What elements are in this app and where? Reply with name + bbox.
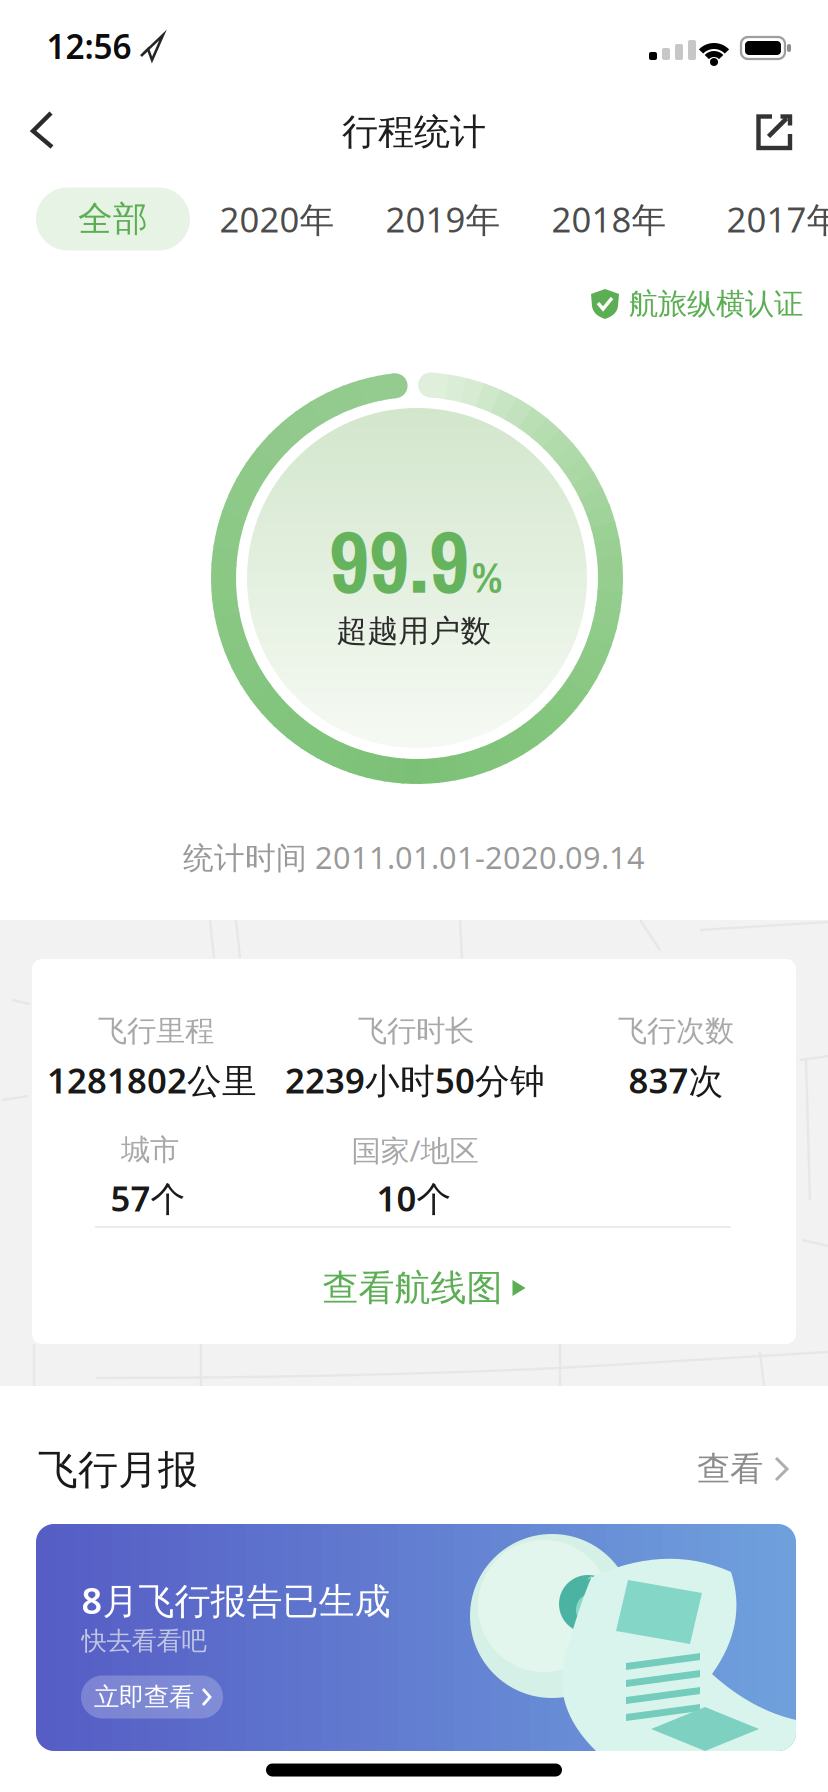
staticText: 飞行次数 bbox=[618, 1013, 734, 1049]
staticText: 立即查看 bbox=[94, 1681, 194, 1712]
button[interactable]: 2020年 bbox=[202, 187, 352, 250]
button[interactable]: Back bbox=[11, 104, 67, 158]
staticText: 全部 bbox=[78, 198, 148, 240]
staticText: 57个 bbox=[110, 1175, 185, 1221]
staticText: 2020年 bbox=[219, 196, 334, 242]
button[interactable]: 全部 bbox=[36, 187, 190, 250]
button[interactable]: Share bbox=[750, 108, 798, 156]
staticText: 8月飞行报告已生成 bbox=[81, 1576, 390, 1624]
staticText: 城市 bbox=[121, 1132, 179, 1168]
staticText: 2019年 bbox=[385, 196, 500, 242]
staticText: 99.9 bbox=[329, 502, 469, 620]
staticText: 飞行里程 bbox=[98, 1013, 214, 1049]
staticText: 飞行月报 bbox=[38, 1445, 198, 1494]
button[interactable]: 2017年 bbox=[709, 187, 828, 250]
button[interactable]: 查看 bbox=[677, 1444, 807, 1494]
staticText: % bbox=[471, 548, 502, 606]
staticText: 2017年 bbox=[726, 196, 828, 242]
staticText: 2239小时50分钟 bbox=[285, 1057, 545, 1103]
button[interactable]: 2019年 bbox=[368, 187, 518, 250]
staticText: 统计时间 2011.01.01-2020.09.14 bbox=[183, 837, 645, 877]
staticText: 1281802公里 bbox=[47, 1057, 257, 1103]
staticText: 行程统计 bbox=[342, 110, 486, 154]
staticText: 查看 bbox=[697, 1448, 763, 1489]
staticText: 快去看看吧 bbox=[81, 1625, 206, 1656]
staticText: 查看航线图 bbox=[322, 1266, 502, 1310]
button[interactable]: 8月飞行报告已生成 bbox=[36, 1524, 796, 1751]
staticText: 10个 bbox=[376, 1175, 451, 1221]
staticText: 飞行时长 bbox=[358, 1013, 474, 1049]
staticText: 12:56 bbox=[46, 24, 131, 68]
button[interactable]: 查看航线图 bbox=[284, 1258, 564, 1318]
button[interactable]: 2018年 bbox=[534, 187, 684, 250]
staticText: 航旅纵横认证 bbox=[629, 286, 803, 322]
staticText: 超越用户数 bbox=[336, 612, 491, 650]
staticText: 2018年 bbox=[551, 196, 666, 242]
staticText: 国家/地区 bbox=[351, 1130, 478, 1169]
staticText: 837次 bbox=[628, 1057, 723, 1103]
